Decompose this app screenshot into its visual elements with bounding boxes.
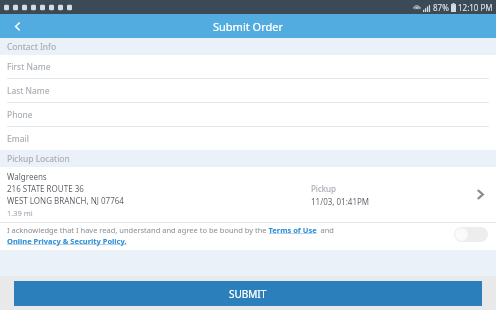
staticText: Email (7, 133, 29, 145)
staticText: 87% (433, 2, 449, 13)
staticText: SUBMIT (229, 287, 267, 301)
button[interactable]: SUBMIT (14, 281, 482, 306)
staticText: Pickup (311, 183, 336, 194)
button[interactable]: Accept terms toggle (454, 227, 488, 242)
staticText: Submit Order (213, 19, 283, 34)
button[interactable]: Back (0, 14, 34, 38)
staticText: Last Name (7, 85, 50, 97)
button[interactable]: Online Privacy & Security Policy. (7, 236, 127, 246)
staticText: Phone (7, 109, 33, 121)
staticText: 11/03, 01:41PM (311, 196, 370, 207)
staticText: I acknowledge that I have read, understa… (7, 225, 334, 235)
button[interactable]: Email (0, 127, 496, 150)
button[interactable]: Last Name (0, 79, 496, 102)
button[interactable]: Walgreens (0, 167, 496, 222)
staticText: Walgreens (7, 171, 47, 182)
button[interactable]: Phone (0, 103, 496, 126)
staticText: Pickup Location (7, 153, 70, 165)
staticText: 1.39 mi (7, 208, 33, 218)
staticText: Contact Info (7, 41, 57, 53)
staticText: First Name (7, 61, 51, 73)
staticText: 12:10 PM (458, 2, 493, 13)
staticText: 216 STATE ROUTE 36 (7, 183, 84, 194)
button[interactable]: First Name (0, 55, 496, 78)
staticText: WEST LONG BRANCH, NJ 07764 (7, 195, 124, 206)
